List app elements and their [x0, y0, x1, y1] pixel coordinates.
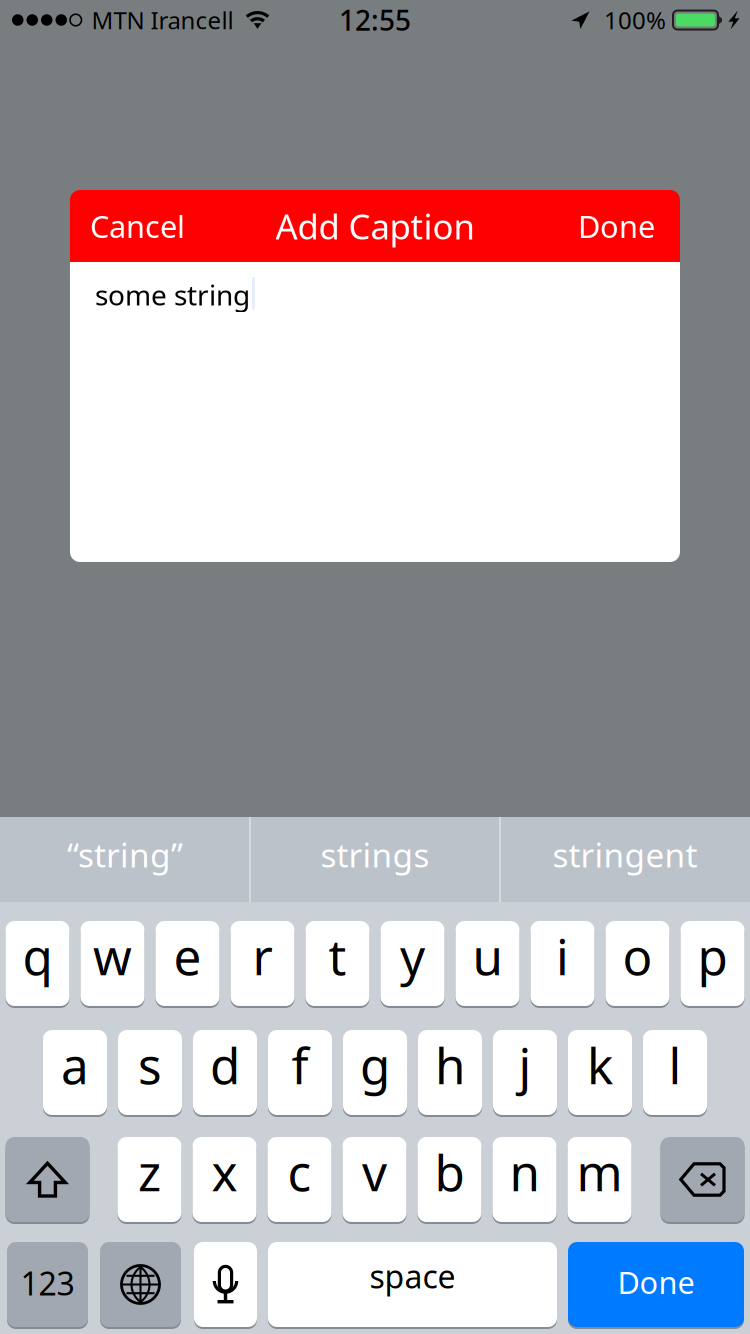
button[interactable]: Cancel — [70, 190, 199, 262]
button[interactable]: x — [192, 1137, 256, 1224]
button[interactable]: c — [267, 1137, 331, 1224]
button[interactable]: p — [680, 921, 744, 1008]
staticText: x — [211, 1139, 237, 1205]
button[interactable]: u — [455, 921, 519, 1008]
button[interactable]: w — [80, 921, 144, 1008]
staticText: c — [287, 1139, 311, 1205]
staticText: Cancel — [90, 206, 185, 246]
button[interactable]: f — [268, 1030, 332, 1117]
button[interactable]: Done — [564, 190, 680, 262]
staticText: space — [369, 1255, 455, 1297]
staticText: g — [360, 1032, 390, 1098]
button[interactable]: s — [118, 1030, 182, 1117]
staticText: b — [434, 1139, 464, 1205]
button[interactable]: b — [417, 1137, 481, 1224]
button[interactable]: Shift — [5, 1137, 89, 1224]
staticText: i — [556, 923, 569, 989]
button[interactable]: space — [268, 1242, 557, 1329]
staticText: Add Caption — [275, 203, 474, 249]
button[interactable]: Delete — [660, 1137, 744, 1224]
staticText: r — [252, 923, 272, 989]
staticText: w — [93, 923, 132, 989]
staticText: 100% — [604, 4, 666, 36]
staticText: some string — [95, 276, 250, 313]
staticText: s — [138, 1032, 162, 1098]
button[interactable]: m — [567, 1137, 631, 1224]
staticText: k — [587, 1032, 613, 1098]
staticText: strings — [320, 832, 429, 877]
staticText: n — [509, 1139, 539, 1205]
staticText: a — [61, 1032, 89, 1098]
staticText: Done — [578, 206, 655, 246]
staticText: j — [518, 1032, 531, 1098]
staticText: y — [400, 923, 425, 989]
button[interactable]: j — [493, 1030, 557, 1117]
button[interactable]: z — [117, 1137, 181, 1224]
button[interactable]: r — [230, 921, 294, 1008]
button[interactable]: 123 — [7, 1242, 88, 1329]
staticText: f — [291, 1032, 308, 1098]
button[interactable]: q — [5, 921, 69, 1008]
staticText: stringent — [552, 832, 697, 877]
staticText: “string” — [67, 832, 183, 877]
staticText: m — [576, 1139, 622, 1205]
staticText: t — [328, 923, 346, 989]
staticText: d — [210, 1032, 240, 1098]
button[interactable]: Done — [568, 1242, 744, 1329]
staticText: v — [362, 1139, 387, 1205]
button[interactable]: “string” — [0, 817, 250, 902]
staticText: o — [622, 923, 652, 989]
button[interactable]: n — [492, 1137, 556, 1224]
staticText: h — [435, 1032, 465, 1098]
staticText: z — [138, 1139, 161, 1205]
button[interactable]: k — [568, 1030, 632, 1117]
button[interactable]: g — [343, 1030, 407, 1117]
button[interactable]: stringent — [500, 817, 750, 902]
button[interactable]: Next keyboard — [100, 1242, 181, 1329]
button[interactable]: d — [193, 1030, 257, 1117]
button[interactable]: t — [305, 921, 369, 1008]
button[interactable]: strings — [250, 817, 500, 902]
button[interactable]: e — [155, 921, 219, 1008]
staticText: 123 — [20, 1262, 74, 1304]
staticText: 12:55 — [339, 1, 411, 39]
staticText: q — [22, 923, 52, 989]
staticText: u — [472, 923, 502, 989]
button[interactable]: a — [43, 1030, 107, 1117]
button[interactable]: Dictation — [194, 1242, 257, 1329]
button[interactable]: i — [530, 921, 594, 1008]
button[interactable]: o — [605, 921, 669, 1008]
staticText: e — [173, 923, 201, 989]
button[interactable]: l — [643, 1030, 707, 1117]
staticText: l — [668, 1032, 681, 1098]
button[interactable]: v — [342, 1137, 406, 1224]
button[interactable]: y — [380, 921, 444, 1008]
button[interactable]: h — [418, 1030, 482, 1117]
staticText: MTN Irancell — [91, 4, 233, 36]
staticText: p — [697, 923, 727, 989]
staticText: Done — [617, 1262, 694, 1302]
